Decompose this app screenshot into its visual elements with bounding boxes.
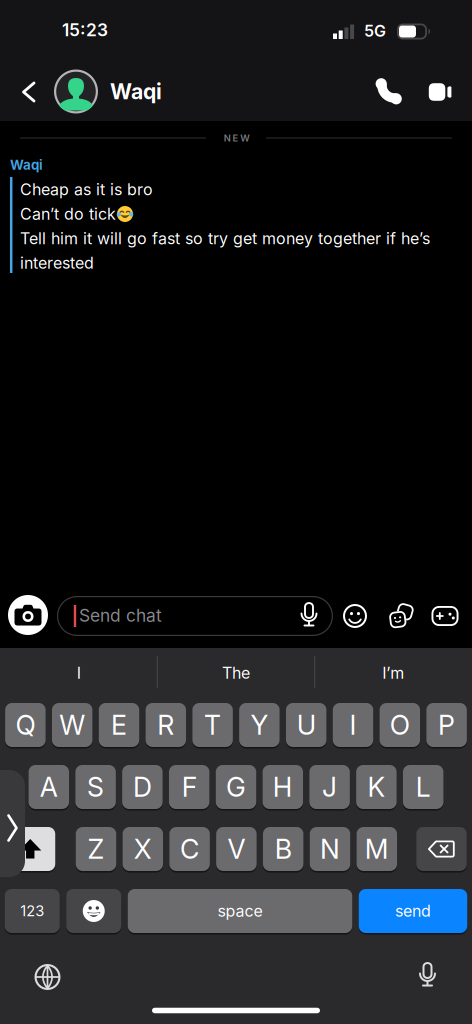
button[interactable]: Emoji keyboard [66, 888, 121, 934]
button[interactable]: J [309, 764, 350, 810]
staticText: W [59, 709, 85, 741]
button[interactable]: F [169, 764, 209, 810]
staticText: 123 [20, 902, 44, 920]
staticText: K [367, 771, 385, 803]
button[interactable]: Call [366, 70, 410, 114]
staticText: C [180, 833, 199, 865]
button[interactable]: The [166, 651, 306, 695]
button[interactable]: Emoji [340, 601, 370, 631]
staticText: interested [20, 254, 94, 272]
button[interactable]: R [145, 702, 186, 748]
button[interactable]: 123 [5, 888, 60, 934]
staticText: L [416, 771, 431, 803]
staticText: B [275, 833, 292, 865]
staticText: H [273, 771, 293, 803]
button[interactable]: send [359, 888, 467, 934]
staticText: Z [87, 833, 104, 865]
button[interactable]: V [216, 826, 257, 872]
button[interactable]: Shift [5, 826, 55, 872]
button[interactable]: B [263, 826, 303, 872]
button[interactable]: A [29, 764, 69, 810]
button[interactable]: I [333, 702, 373, 748]
staticText: T [204, 709, 221, 741]
staticText: space [217, 902, 262, 920]
staticText: Y [250, 709, 268, 741]
staticText: Tell him it will go fast so try get mone… [20, 229, 430, 248]
button[interactable]: E [99, 702, 139, 748]
staticText: U [297, 709, 316, 741]
staticText: 15:23 [62, 20, 108, 40]
staticText: M [365, 833, 389, 865]
button[interactable]: Camera [8, 595, 48, 635]
button[interactable]: Y [239, 702, 280, 748]
button[interactable]: S [75, 764, 116, 810]
staticText: G [226, 771, 246, 803]
button[interactable]: D [122, 764, 163, 810]
button[interactable]: W [52, 702, 92, 748]
button[interactable]: U [286, 702, 326, 748]
button[interactable]: L [403, 764, 443, 810]
staticText: Waqi [110, 79, 162, 104]
button[interactable]: Next keyboard [33, 963, 61, 991]
staticText: E [111, 709, 127, 741]
button[interactable]: O [380, 702, 420, 748]
staticText: V [227, 833, 245, 865]
staticText: Cheap as it is bro [20, 180, 153, 199]
button[interactable]: Back [10, 73, 46, 110]
button[interactable]: Delete [416, 826, 467, 872]
button[interactable]: Dictation [414, 961, 440, 991]
staticText: R [157, 709, 174, 741]
button[interactable]: G [216, 764, 256, 810]
button[interactable]: X [122, 826, 163, 872]
button[interactable]: Stickers [385, 600, 417, 632]
button[interactable]: One-handed keyboard [0, 770, 25, 877]
staticText: P [438, 709, 455, 741]
staticText: I [349, 709, 356, 741]
staticText: X [134, 833, 152, 865]
button[interactable]: space [128, 888, 352, 934]
button[interactable]: P [426, 702, 467, 748]
staticText: Waqi [10, 157, 43, 173]
button[interactable]: Q [5, 702, 46, 748]
button[interactable]: Games [429, 600, 461, 632]
staticText: S [87, 771, 104, 803]
button[interactable]: Send chat [57, 596, 333, 636]
button[interactable]: T [192, 702, 233, 748]
staticText: The [222, 664, 250, 682]
staticText: N [320, 833, 340, 865]
staticText: Can’t do tick [20, 205, 116, 223]
button[interactable]: H [263, 764, 303, 810]
staticText: send [395, 902, 431, 920]
staticText: D [133, 771, 152, 803]
button[interactable]: M [357, 826, 397, 872]
staticText: A [40, 771, 58, 803]
staticText: I [77, 664, 81, 682]
staticText: Send chat [79, 605, 162, 626]
button[interactable]: Video Call [418, 70, 462, 114]
staticText: 5G [364, 22, 386, 40]
staticText: I’m [382, 664, 404, 682]
button[interactable]: N [310, 826, 350, 872]
button[interactable]: I’m [323, 651, 463, 695]
button[interactable]: C [169, 826, 210, 872]
staticText: NEW [224, 132, 250, 143]
button[interactable]: I [9, 651, 149, 695]
staticText: Q [15, 709, 35, 741]
button[interactable]: Waqi [54, 68, 224, 114]
staticText: J [322, 771, 337, 803]
button[interactable]: Z [76, 826, 116, 872]
button[interactable]: K [356, 764, 397, 810]
staticText: O [390, 709, 410, 741]
staticText: F [182, 771, 197, 803]
